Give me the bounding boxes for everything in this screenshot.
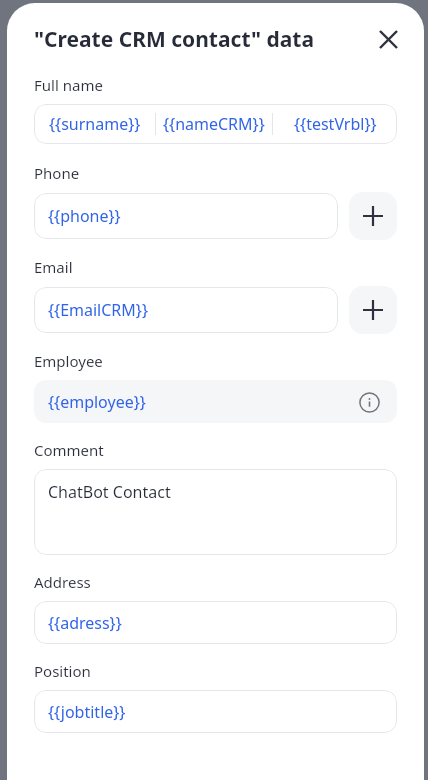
button[interactable]: {{adress}}	[34, 601, 397, 644]
staticText: {{EmailCRM}}	[48, 299, 148, 321]
button[interactable]: Info	[357, 390, 381, 414]
staticText: {{adress}}	[48, 612, 122, 634]
button[interactable]: {{phone}}	[34, 193, 338, 239]
staticText: Phone	[34, 163, 80, 183]
staticText: "Create CRM contact" data	[34, 25, 314, 54]
staticText: {{jobtitle}}	[48, 701, 126, 723]
staticText: Employee	[34, 351, 103, 371]
staticText: Email	[34, 257, 73, 277]
staticText: Position	[34, 661, 91, 681]
button[interactable]: Add	[349, 192, 397, 240]
staticText: {{employee}}	[48, 391, 146, 413]
staticText: Full name	[34, 75, 103, 95]
button[interactable]: Add	[349, 286, 397, 334]
button[interactable]: {{employee}}	[34, 380, 397, 423]
button[interactable]: {{jobtitle}}	[34, 690, 397, 733]
staticText: {{nameCRM}}	[163, 113, 265, 135]
staticText: {{surname}}	[49, 113, 141, 135]
button[interactable]: ChatBot Contact	[34, 469, 397, 555]
button[interactable]: {{surname}}	[34, 104, 397, 144]
button[interactable]: {{EmailCRM}}	[34, 287, 338, 333]
staticText: ChatBot Contact	[48, 481, 171, 503]
staticText: {{testVrbl}}	[294, 113, 377, 135]
staticText: Address	[34, 572, 91, 592]
staticText: Comment	[34, 440, 104, 460]
staticText: {{phone}}	[48, 205, 121, 227]
button[interactable]: Close	[366, 17, 410, 61]
